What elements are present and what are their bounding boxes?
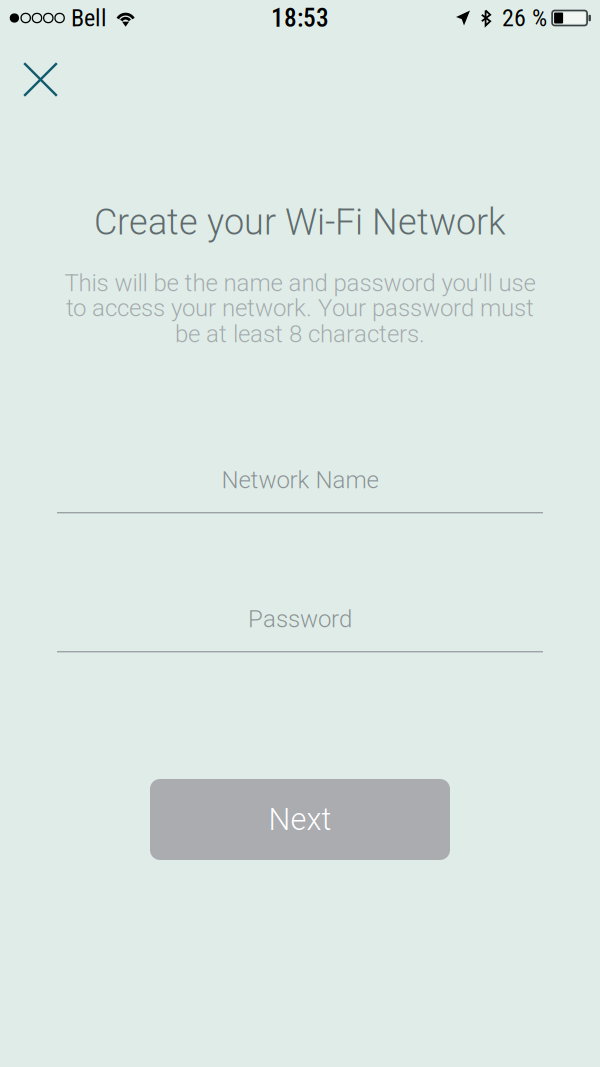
staticText: Create your Wi-Fi Network <box>94 201 506 243</box>
staticText: Network Name <box>221 466 378 494</box>
staticText: Next <box>268 801 331 837</box>
staticText: be at least 8 characters. <box>175 320 425 348</box>
staticText: Bell <box>71 4 107 32</box>
staticText: 18:53 <box>271 3 329 33</box>
button[interactable]: Close <box>11 50 70 109</box>
staticText: Password <box>248 605 352 633</box>
staticText: This will be the name and password you'l… <box>64 269 535 297</box>
staticText: 26 % <box>502 4 547 32</box>
staticText: to access your network. Your password mu… <box>66 294 534 322</box>
button[interactable]: Next <box>150 779 450 860</box>
